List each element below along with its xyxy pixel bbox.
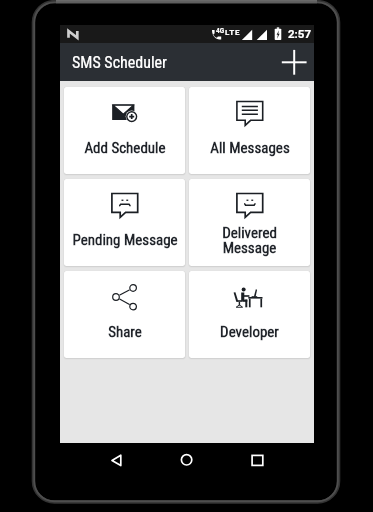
button[interactable]: Add Schedule	[64, 87, 185, 174]
staticText: SMS Scheduler	[72, 53, 167, 72]
button[interactable]: All Messages	[189, 87, 310, 174]
staticText: 4G	[216, 27, 225, 35]
button[interactable]: Add schedule	[276, 45, 310, 79]
staticText: All Messages	[210, 139, 290, 157]
staticText: Add Schedule	[84, 139, 166, 157]
staticText: Pending Message	[72, 231, 178, 249]
staticText: Share	[108, 323, 142, 341]
staticText: Developer	[220, 323, 279, 341]
staticText: Delivered Message	[222, 224, 277, 257]
button[interactable]: Developer	[189, 271, 310, 358]
button[interactable]: Pending Message	[64, 179, 185, 266]
button[interactable]: Share	[64, 271, 185, 358]
staticText: 2:57	[288, 27, 312, 40]
staticText: LTE	[225, 28, 241, 37]
button[interactable]: Delivered Message	[189, 179, 310, 266]
